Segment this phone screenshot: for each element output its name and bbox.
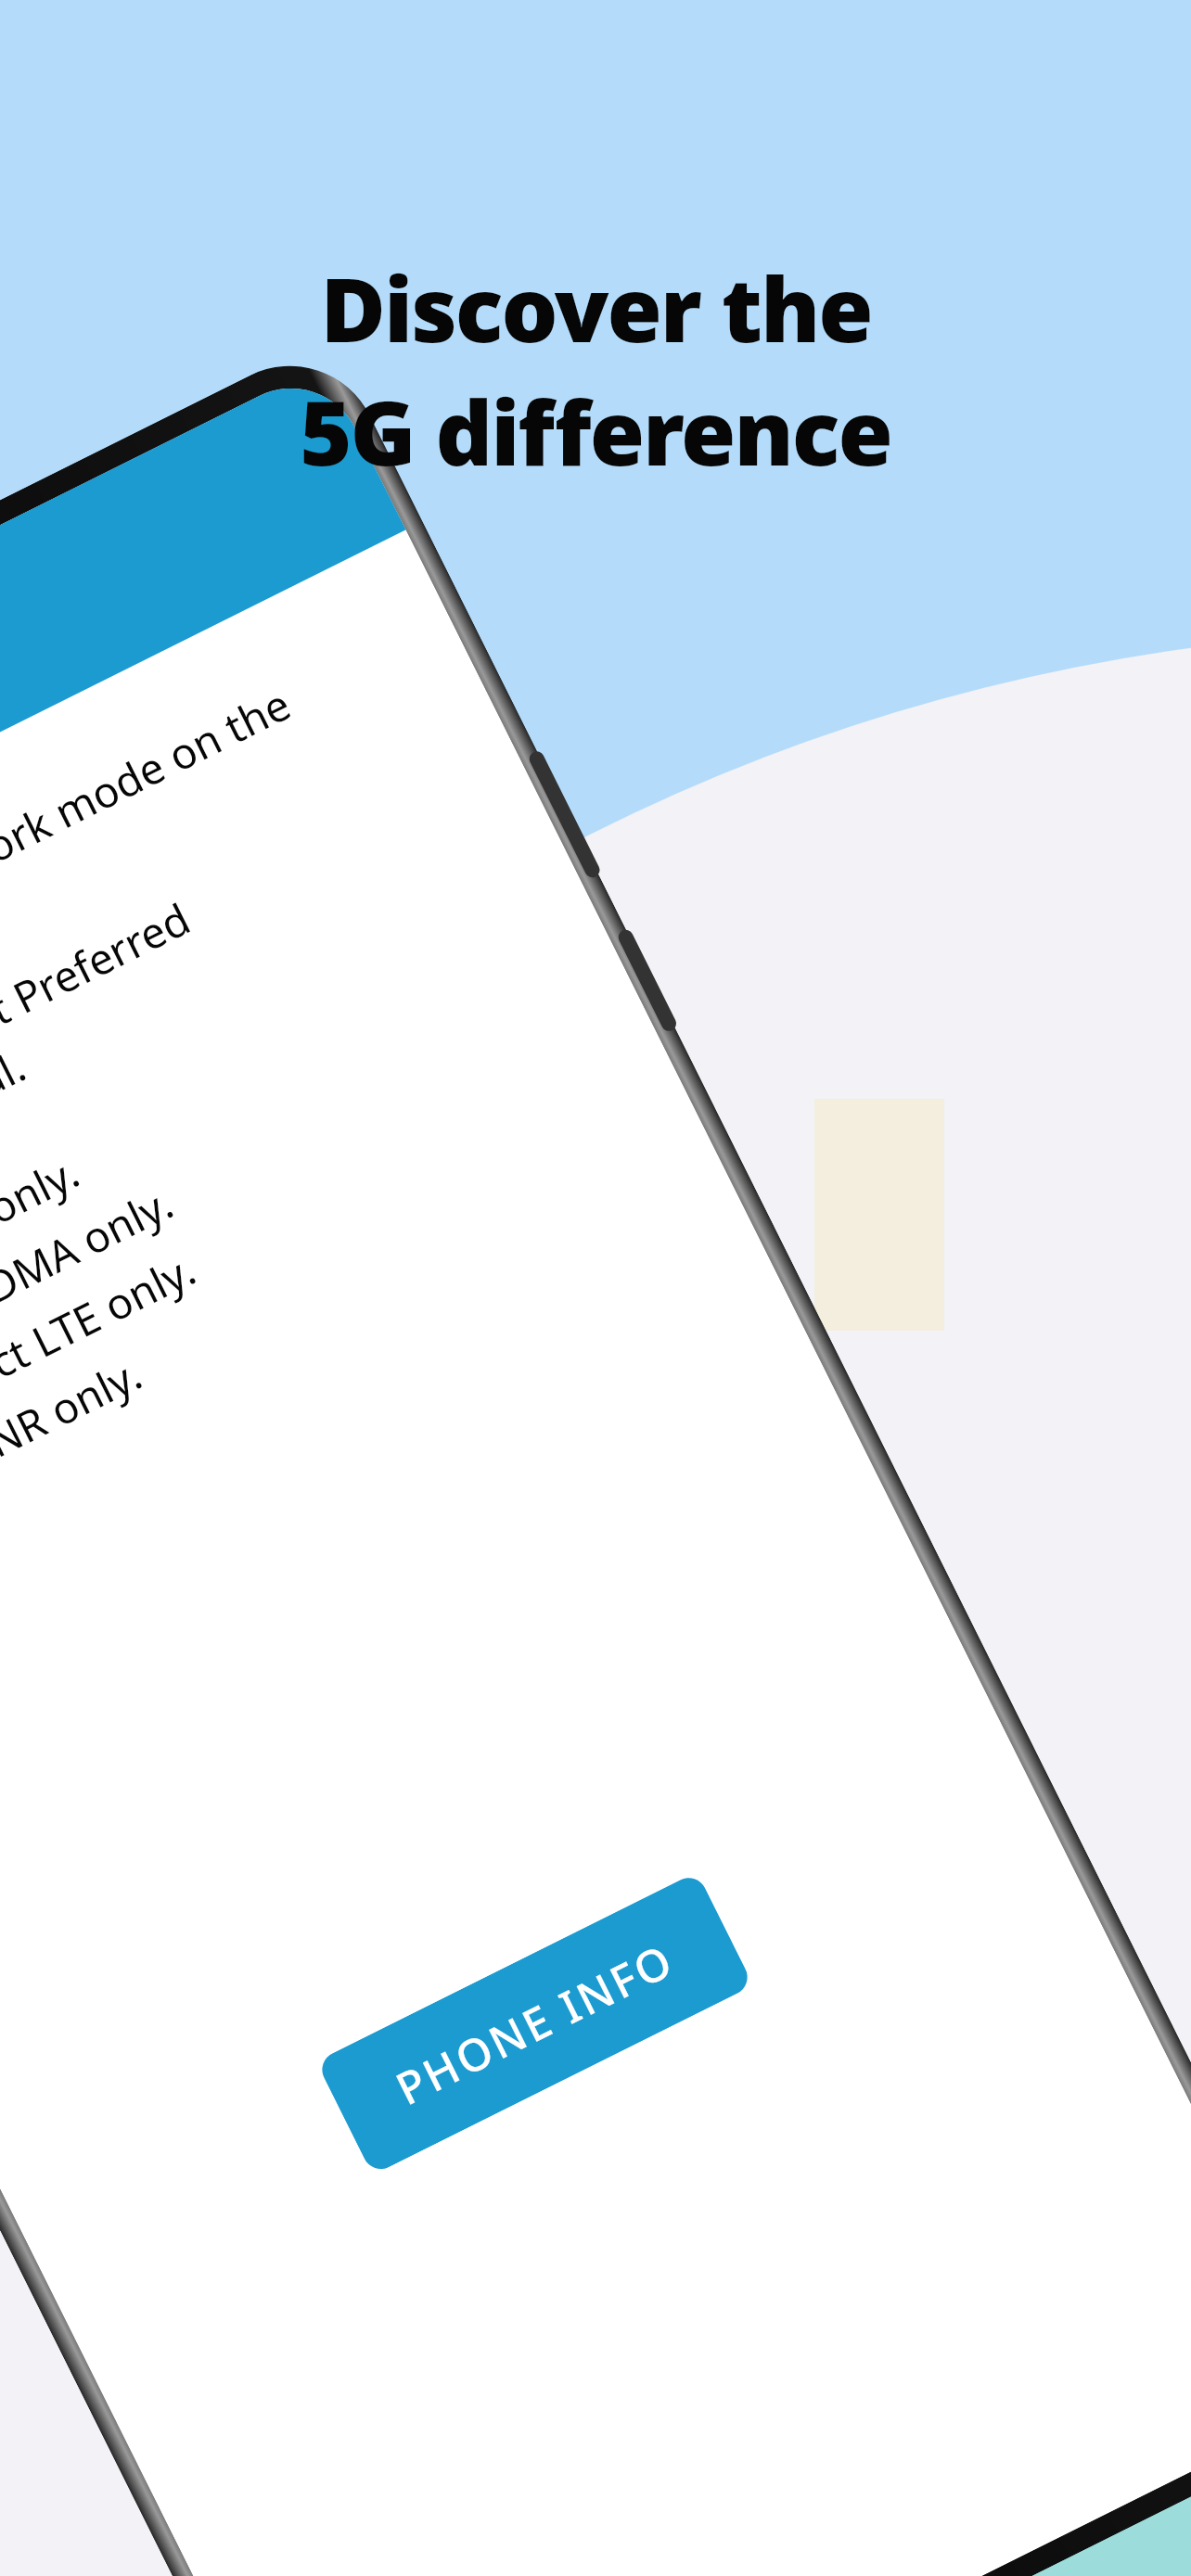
staticText: For 2G select GSM only. (0, 1142, 89, 1404)
staticText: For 3G select WCDMA only. (0, 1173, 182, 1466)
staticText: For 5G select NR only. (0, 1344, 151, 1591)
button[interactable]: PHONE INFO (316, 1872, 754, 2175)
staticText: Discover the (320, 247, 872, 368)
button[interactable]: Navigate up (0, 364, 406, 1022)
staticText: PHONE INFO (386, 1929, 684, 2118)
staticText: Select your preferred network mode on th… (0, 674, 326, 1165)
staticText: 5G difference (300, 370, 891, 491)
staticText: For 4G/LTE select LTE only. (0, 1240, 205, 1528)
staticText: For automatic mode Set Preferred network… (0, 889, 225, 1297)
